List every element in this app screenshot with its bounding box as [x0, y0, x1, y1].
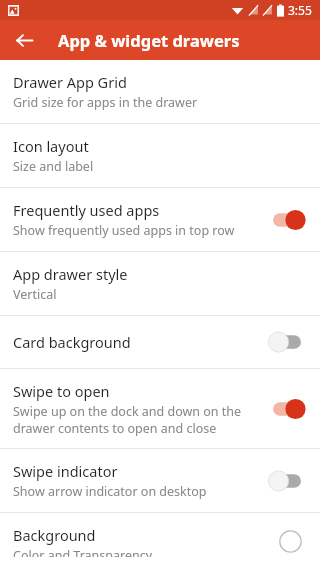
staticText: Icon layout — [13, 136, 89, 156]
staticText: Color and Transparency — [13, 547, 153, 557]
button[interactable]: Toggle on — [267, 206, 307, 234]
button[interactable]: Drawer App Grid — [0, 60, 320, 123]
staticText: Show frequently used apps in top row — [13, 222, 235, 239]
staticText: Swipe to open — [13, 381, 110, 401]
staticText: Background — [13, 525, 96, 545]
button[interactable]: Back — [4, 20, 44, 60]
staticText: 3:55 — [288, 2, 312, 18]
staticText: Frequently used apps — [13, 200, 160, 220]
staticText: App drawer style — [13, 264, 128, 284]
button[interactable]: Toggle on — [267, 395, 307, 423]
staticText: Card background — [13, 332, 131, 352]
staticText: Grid size for apps in the drawer — [13, 94, 198, 111]
staticText: Vertical — [13, 286, 57, 303]
staticText: Swipe up on the dock and down on the dra… — [13, 403, 257, 436]
button[interactable]: Swipe indicator — [0, 449, 320, 512]
button[interactable]: Background — [0, 513, 320, 569]
staticText: Drawer App Grid — [13, 72, 127, 92]
button[interactable]: Background color — [273, 525, 307, 557]
staticText: App & widget drawers — [58, 29, 240, 51]
button[interactable]: Toggle off — [267, 467, 307, 495]
button[interactable]: Icon layout — [0, 124, 320, 187]
staticText: Show arrow indicator on desktop — [13, 483, 207, 500]
button[interactable]: Toggle off — [267, 328, 307, 356]
button[interactable]: App drawer style — [0, 252, 320, 315]
button[interactable]: Card background — [0, 316, 320, 368]
staticText: Swipe indicator — [13, 461, 118, 481]
staticText: Size and label — [13, 158, 94, 175]
button[interactable]: Swipe to open — [0, 369, 320, 448]
button[interactable]: Frequently used apps — [0, 188, 320, 251]
